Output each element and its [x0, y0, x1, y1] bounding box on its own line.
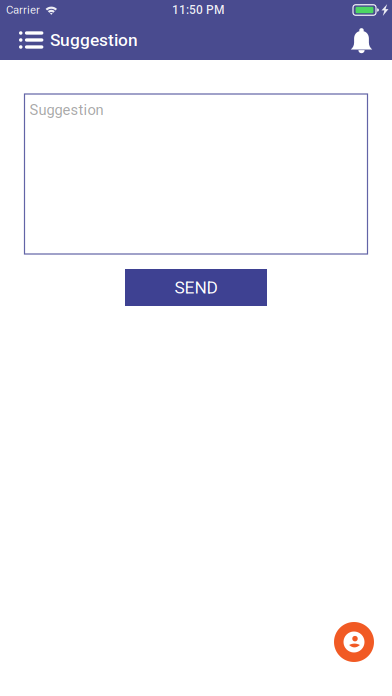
- button[interactable]: SEND: [125, 269, 267, 306]
- staticText: Suggestion: [50, 30, 138, 50]
- staticText: Carrier: [6, 3, 40, 17]
- staticText: 11:50 PM: [172, 3, 224, 17]
- staticText: Suggestion: [29, 101, 103, 119]
- button[interactable]: Suggestion: [24, 94, 367, 254]
- button[interactable]: Account: [334, 622, 374, 662]
- staticText: SEND: [174, 277, 217, 298]
- button[interactable]: Notifications: [345, 20, 378, 60]
- button[interactable]: Menu: [19, 20, 50, 60]
